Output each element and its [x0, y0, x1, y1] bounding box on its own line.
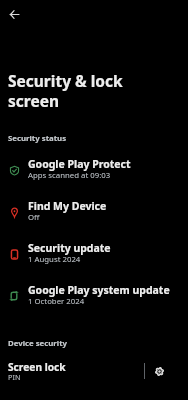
- staticText: PIN: [8, 372, 21, 382]
- button[interactable]: Security update: [0, 233, 188, 275]
- button[interactable]: Screen lock settings: [145, 354, 174, 388]
- staticText: 1 October 2024: [28, 296, 85, 307]
- staticText: Security status: [8, 133, 67, 144]
- staticText: Security & lock screen: [8, 70, 123, 112]
- staticText: Screen lock: [8, 360, 66, 374]
- staticText: 1 August 2024: [28, 254, 81, 265]
- staticText: Google Play Protect: [28, 157, 131, 171]
- button[interactable]: Google Play Protect: [0, 149, 188, 191]
- button[interactable]: Back: [2, 2, 26, 26]
- button[interactable]: Google Play system update: [0, 275, 188, 317]
- staticText: Find My Device: [28, 199, 107, 213]
- staticText: Security update: [28, 241, 111, 255]
- button[interactable]: Screen lock: [0, 354, 144, 388]
- staticText: Apps scanned at 09:03: [28, 170, 111, 181]
- staticText: Google Play system update: [28, 283, 170, 297]
- staticText: Device security: [8, 338, 68, 349]
- staticText: Off: [28, 212, 40, 223]
- button[interactable]: Find My Device: [0, 191, 188, 233]
